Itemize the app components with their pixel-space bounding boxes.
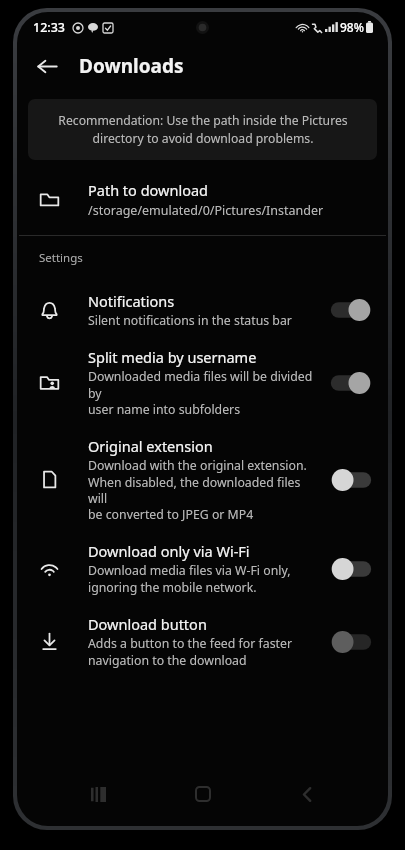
- button[interactable]: Notifications: [17, 282, 388, 338]
- button[interactable]: Back: [25, 44, 69, 88]
- staticText: Download button: [88, 614, 207, 634]
- staticText: /storage/emulated/0/Pictures/Instander: [88, 202, 324, 219]
- staticText: Notifications: [88, 291, 175, 311]
- staticText: Adds a button to the feed for faster nav…: [88, 635, 292, 669]
- staticText: Original extension: [88, 436, 213, 456]
- staticText: 12:33: [33, 19, 66, 36]
- button[interactable]: Home: [180, 774, 226, 814]
- staticText: Split media by username: [88, 347, 257, 367]
- button[interactable]: Download button: [17, 605, 388, 678]
- staticText: Silent notifications in the status bar: [88, 312, 292, 329]
- staticText: Path to download: [88, 180, 208, 200]
- button[interactable]: Original extension: [17, 427, 388, 532]
- button[interactable]: Toggle: [330, 629, 372, 655]
- button[interactable]: Recents: [75, 774, 121, 814]
- button[interactable]: Path to download: [17, 171, 388, 228]
- button[interactable]: Toggle: [330, 297, 372, 323]
- staticText: 98%: [340, 19, 364, 35]
- staticText: Downloaded media files will be divided b…: [88, 368, 322, 418]
- staticText: Download media files via W-Fi only, igno…: [88, 562, 291, 596]
- staticText: Download only via Wi-Fi: [88, 541, 250, 561]
- button[interactable]: Toggle: [330, 370, 372, 396]
- staticText: Downloads: [79, 53, 184, 79]
- button[interactable]: Split media by username: [17, 338, 388, 427]
- staticText: Recommendation: Use the path inside the …: [58, 112, 348, 147]
- button[interactable]: Back: [284, 774, 330, 814]
- staticText: Download with the original extension. Wh…: [88, 457, 322, 523]
- button[interactable]: Toggle: [330, 467, 372, 493]
- staticText: Settings: [39, 250, 83, 266]
- button[interactable]: Download only via Wi-Fi: [17, 532, 388, 605]
- button[interactable]: Toggle: [330, 556, 372, 582]
